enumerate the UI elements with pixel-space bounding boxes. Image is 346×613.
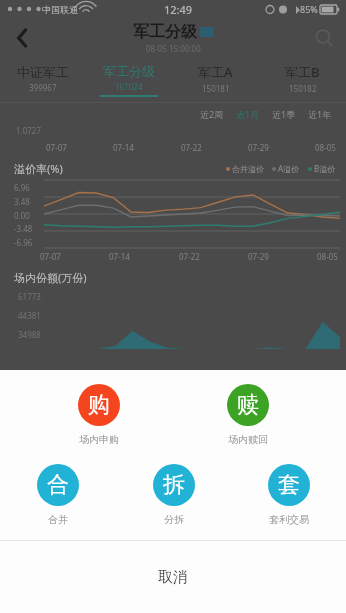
button[interactable]: 合	[0, 464, 116, 526]
staticText: 07-22	[179, 251, 200, 262]
staticText: 161024	[115, 81, 143, 92]
staticText: A溢价	[278, 163, 300, 174]
staticText: 61773	[18, 291, 41, 302]
staticText: 军工A	[198, 63, 233, 81]
button[interactable]: 近1月	[236, 108, 260, 120]
staticText: 套利交易	[269, 513, 309, 526]
button[interactable]: 近1年	[308, 108, 332, 120]
staticText: 07-29	[248, 251, 269, 262]
staticText: 07-07	[46, 142, 67, 153]
button[interactable]: Back	[0, 18, 44, 58]
staticText: 85%	[300, 3, 318, 15]
staticText: 取消	[158, 568, 188, 587]
staticText: 07-14	[109, 251, 130, 262]
button[interactable]: 赎	[173, 384, 322, 446]
staticText: 3.48	[14, 196, 30, 207]
staticText: 07-14	[113, 142, 134, 153]
button[interactable]: 近1季	[272, 108, 296, 120]
staticText: -6.96	[14, 237, 33, 248]
staticText: 购	[88, 391, 110, 419]
staticText: -3.48	[14, 223, 33, 234]
staticText: 合并	[48, 513, 68, 526]
staticText: 近1季	[272, 108, 296, 120]
staticText: 近1年	[308, 108, 332, 120]
staticText: 08-05	[315, 142, 336, 153]
staticText: 溢价率(%)	[14, 161, 63, 176]
staticText: 场内赎回	[228, 433, 268, 446]
staticText: B溢价	[314, 163, 336, 174]
staticText: 07-22	[181, 142, 202, 153]
staticText: 分拆	[164, 513, 184, 526]
button[interactable]: 军工分级	[86, 58, 172, 102]
staticText: 近1月	[236, 108, 260, 120]
staticText: 合并溢价	[232, 164, 264, 174]
button[interactable]: 军工B	[259, 58, 346, 102]
staticText: 44381	[18, 310, 41, 321]
staticText: 场内份额(万份)	[14, 270, 87, 285]
staticText: 12:49	[164, 2, 193, 17]
staticText: 150182	[289, 83, 317, 94]
staticText: 07-29	[248, 142, 269, 153]
staticText: 150181	[202, 83, 230, 94]
staticText: 34988	[18, 329, 41, 340]
staticText: 场内申购	[79, 433, 119, 446]
staticText: 中国联通	[42, 4, 78, 15]
staticText: 0.00	[14, 210, 30, 221]
staticText: 拆	[163, 471, 185, 499]
staticText: 军工分级	[133, 22, 197, 42]
staticText: 08-05	[317, 251, 338, 262]
button[interactable]: 近2周	[200, 108, 224, 120]
staticText: 套	[278, 471, 300, 499]
staticText: 近2周	[200, 108, 224, 120]
staticText: 6.96	[14, 182, 30, 193]
button[interactable]: 拆	[116, 464, 231, 526]
staticText: 中证军工	[17, 64, 69, 80]
button[interactable]: 购	[24, 384, 173, 446]
staticText: 军工分级	[103, 63, 155, 79]
staticText: 赎	[237, 391, 259, 419]
staticText: 1.0727	[16, 125, 42, 136]
staticText: 合	[47, 471, 69, 499]
staticText: 军工B	[285, 63, 320, 81]
button[interactable]: 中证军工	[0, 58, 86, 102]
button[interactable]: 取消	[0, 541, 346, 613]
button[interactable]: 军工A	[172, 58, 259, 102]
staticText: 07-07	[40, 251, 61, 262]
staticText: 399967	[29, 82, 57, 93]
button[interactable]: 套	[231, 464, 346, 526]
staticText: 08-05 15:00:00	[146, 43, 201, 54]
